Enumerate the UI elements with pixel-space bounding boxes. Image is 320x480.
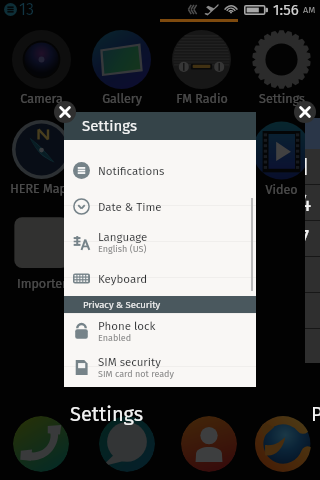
staticText: Settings	[82, 117, 137, 135]
staticText: Phone lock	[98, 319, 156, 333]
staticText: Notifications	[98, 164, 165, 178]
staticText: SIM security	[98, 355, 161, 369]
button[interactable]: Notifications	[2, 0, 38, 20]
button[interactable]: Messages	[99, 416, 155, 472]
staticText: FM Radio	[176, 91, 228, 106]
staticText: Privacy & Security	[83, 299, 161, 310]
staticText: English (US)	[98, 244, 147, 255]
staticText: 1:56	[273, 1, 299, 19]
staticText: 4	[305, 189, 312, 217]
button[interactable]: Video	[241, 121, 320, 197]
staticText: Importer	[17, 276, 67, 291]
staticText: Date & Time	[98, 200, 162, 214]
button[interactable]: Close	[54, 101, 76, 123]
button[interactable]: Importer	[1, 215, 81, 291]
button[interactable]: SIM security	[64, 349, 256, 385]
button[interactable]: Phone	[13, 416, 69, 472]
staticText: SIM card not ready	[98, 369, 174, 380]
button[interactable]: Settings	[241, 30, 320, 106]
button[interactable]: Camera	[1, 30, 81, 106]
staticText: P	[311, 402, 320, 426]
button[interactable]: Close	[294, 101, 316, 123]
button[interactable]: Gallery	[81, 30, 161, 106]
button[interactable]: 1	[305, 118, 320, 363]
staticText: Settings	[70, 402, 144, 426]
staticText: Keyboard	[98, 272, 148, 286]
button[interactable]: FM Radio	[161, 30, 241, 106]
staticText: Video	[265, 182, 298, 197]
staticText: HERE Maps	[10, 181, 73, 196]
button[interactable]: Contacts	[181, 416, 237, 472]
button[interactable]: Phone lock	[64, 313, 256, 349]
staticText: Language	[98, 230, 148, 244]
staticText: 1	[305, 153, 309, 181]
button[interactable]: Keyboard	[64, 260, 256, 296]
staticText: Gallery	[102, 91, 142, 106]
button[interactable]: Browser	[255, 416, 311, 472]
staticText: 13	[19, 0, 34, 19]
staticText: Enabled	[98, 333, 132, 344]
staticText: AM	[303, 5, 316, 16]
staticText: Settings	[259, 91, 305, 106]
button[interactable]: Language	[64, 224, 256, 260]
staticText: 7	[305, 225, 310, 253]
button[interactable]: Date & Time	[64, 188, 256, 224]
button[interactable]: HERE Maps	[1, 120, 81, 196]
staticText: Camera	[20, 91, 63, 106]
button[interactable]: Notifications	[64, 152, 256, 188]
